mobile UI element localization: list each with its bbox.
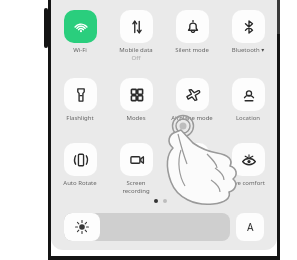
button[interactable] bbox=[64, 213, 230, 241]
button[interactable]: Silent mode bbox=[166, 10, 218, 54]
button[interactable]: Dark mode bbox=[166, 143, 218, 187]
button[interactable]: Auto Rotate bbox=[54, 143, 106, 187]
button[interactable]: Mobile data bbox=[110, 10, 162, 62]
button[interactable]: Bluetooth ▾ bbox=[222, 10, 274, 54]
button[interactable]: Location bbox=[222, 78, 274, 122]
staticText: Silent mode bbox=[166, 46, 218, 54]
button[interactable]: Eye comfort bbox=[222, 143, 274, 187]
staticText: Screen recording bbox=[110, 179, 162, 195]
button[interactable]: A bbox=[236, 213, 264, 241]
staticText: Dark mode bbox=[166, 179, 218, 187]
staticText: Modes bbox=[110, 114, 162, 122]
staticText: Wi-Fi bbox=[54, 46, 106, 54]
staticText: Off bbox=[110, 54, 162, 62]
button[interactable]: Wi-Fi bbox=[54, 10, 106, 54]
staticText: Mobile data bbox=[110, 46, 162, 54]
staticText: Auto Rotate bbox=[54, 179, 106, 187]
staticText: Bluetooth ▾ bbox=[222, 46, 274, 54]
button[interactable]: Modes bbox=[110, 78, 162, 122]
staticText: Location bbox=[222, 114, 274, 122]
staticText: Eye comfort bbox=[222, 179, 274, 187]
staticText: Airplane mode bbox=[166, 114, 218, 122]
button[interactable]: Screen recording bbox=[110, 143, 162, 195]
staticText: Flashlight bbox=[54, 114, 106, 122]
button[interactable]: Airplane mode bbox=[166, 78, 218, 122]
other: Tap pointer bbox=[151, 110, 251, 210]
button[interactable]: Flashlight bbox=[54, 78, 106, 122]
staticText: A bbox=[247, 220, 254, 234]
